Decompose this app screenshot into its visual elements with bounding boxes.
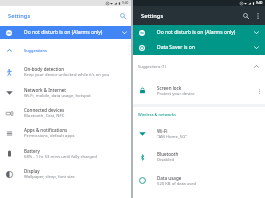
staticText: Keep your device unlocked while it's on … <box>24 72 110 78</box>
staticText: Data Saver is on <box>157 44 195 51</box>
button[interactable]: Screen lock <box>133 77 265 104</box>
button[interactable]: More options <box>252 10 264 22</box>
staticText: Wi-Fi <box>157 128 168 134</box>
button[interactable]: Do not disturb is on (Alarms only) <box>133 25 265 40</box>
staticText: Suggestions (1) <box>138 64 166 69</box>
staticText: Protect your device <box>157 91 195 97</box>
staticText: Bluetooth, Cast, NFC <box>24 113 65 119</box>
staticText: Suggestions <box>24 48 47 53</box>
staticText: 9:40 <box>122 1 129 5</box>
staticText: 9:40 <box>256 1 263 5</box>
button[interactable]: Data Saver is on <box>133 40 265 55</box>
button[interactable]: Do not disturb is on (Alarms only) <box>0 26 131 39</box>
staticText: Display <box>24 168 40 174</box>
button[interactable]: Search <box>117 10 129 22</box>
staticText: Disabled <box>157 157 175 163</box>
staticText: Wi-Fi, mobile, data usage, hotspot <box>24 93 91 99</box>
button[interactable]: Data usage <box>133 169 265 192</box>
button[interactable]: Display <box>0 164 131 184</box>
button[interactable]: Search <box>240 10 252 22</box>
staticText: 68% - 1 hr 53 mins until fully charged <box>24 154 97 160</box>
staticText: Wallpaper, sleep, font size <box>24 174 75 180</box>
button[interactable]: Connected devices <box>0 103 131 123</box>
staticText: Settings <box>8 12 31 20</box>
staticText: Screen lock <box>157 85 182 91</box>
staticText: Settings <box>141 12 164 20</box>
button[interactable]: On-body detection <box>0 62 131 82</box>
staticText: Wireless & networks <box>138 112 176 117</box>
button[interactable]: Wi-Fi <box>133 122 265 145</box>
staticText: Network & Internet <box>24 87 67 93</box>
button[interactable]: Battery <box>0 143 131 164</box>
button[interactable]: Bluetooth <box>133 145 265 169</box>
button[interactable]: Apps & notifications <box>0 123 131 143</box>
staticText: "AM Home_5G" <box>157 134 187 140</box>
staticText: Do not disturb is on (Alarms only) <box>157 29 236 36</box>
staticText: Connected devices <box>24 107 65 113</box>
staticText: 520 KB of data used <box>157 181 197 187</box>
staticText: Do not disturb is on (Alarms only) <box>24 29 103 36</box>
button[interactable]: More options <box>254 86 264 96</box>
staticText: Battery <box>24 148 40 154</box>
staticText: Data usage <box>157 175 182 181</box>
staticText: On-body detection <box>24 66 65 72</box>
button[interactable]: Network & Internet <box>0 82 131 103</box>
staticText: Permissions, default apps <box>24 133 75 139</box>
staticText: Bluetooth <box>157 151 179 157</box>
staticText: Apps & notifications <box>24 127 68 133</box>
